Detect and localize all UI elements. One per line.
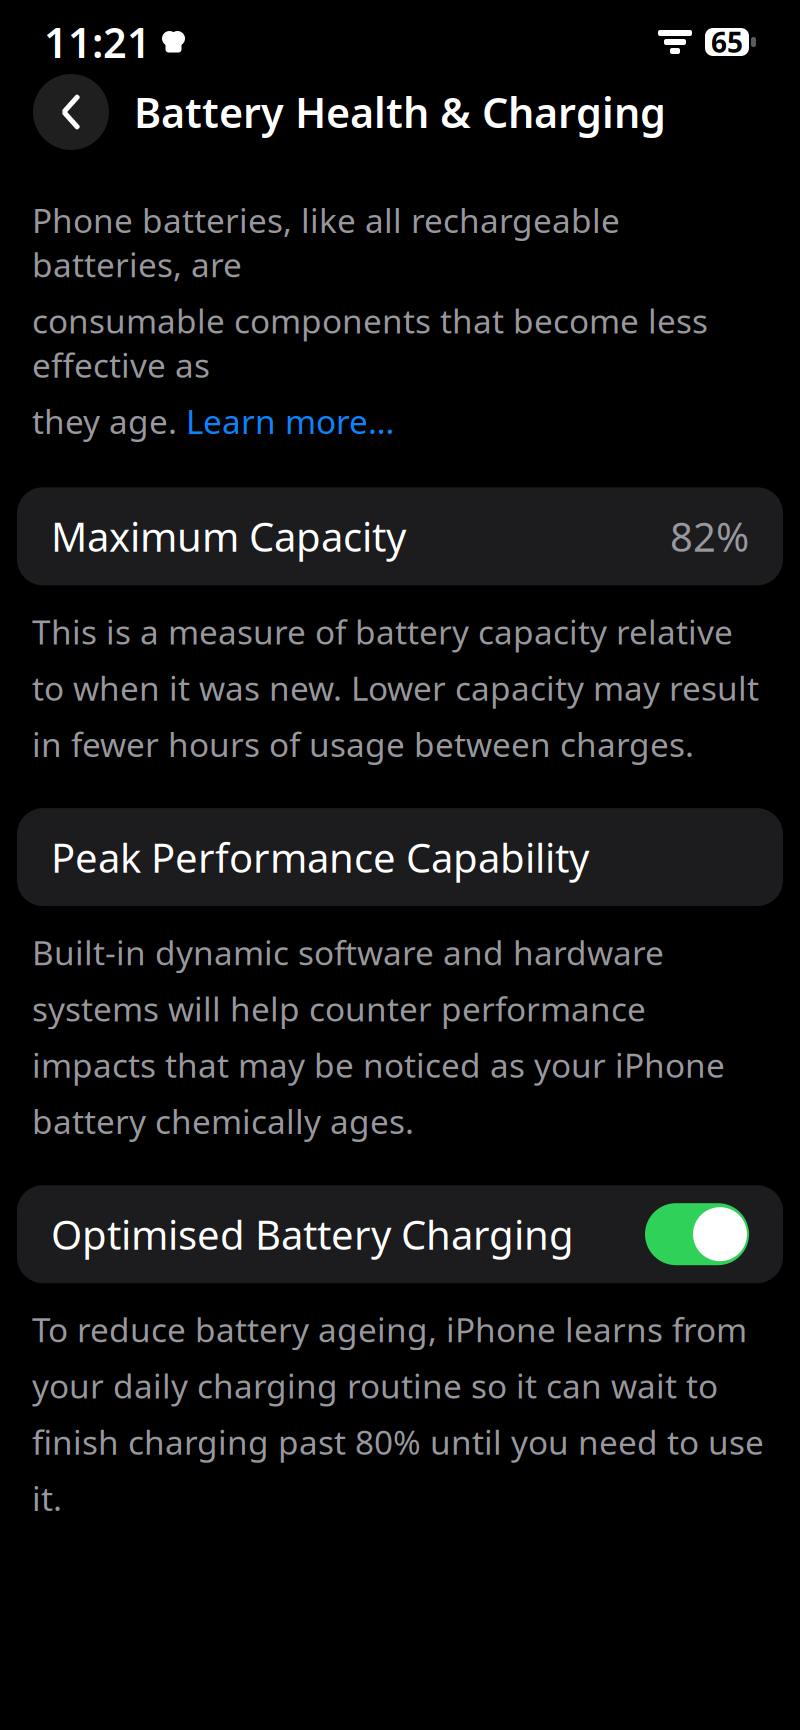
staticText: 65 — [711, 23, 743, 61]
staticText: Optimised Battery Charging — [51, 1208, 574, 1261]
staticText: they age. — [32, 399, 186, 443]
button[interactable]: Optimised Battery Charging — [17, 1185, 783, 1283]
staticText: Built-in dynamic software and hardware s… — [32, 930, 725, 1143]
button[interactable]: Maximum Capacity — [17, 487, 783, 585]
button[interactable]: Peak Performance Capability — [17, 808, 783, 906]
button[interactable]: Back — [33, 74, 109, 150]
button[interactable]: Learn more… — [186, 399, 394, 443]
staticText: 82% — [670, 510, 749, 563]
staticText: To reduce battery ageing, iPhone learns … — [32, 1307, 764, 1520]
staticText: 11:21 — [44, 15, 151, 69]
staticText: consumable components that become less e… — [32, 298, 708, 387]
staticText: Peak Performance Capability — [51, 831, 589, 884]
staticText: Phone batteries, like all rechargeable b… — [32, 198, 620, 286]
staticText: Learn more… — [186, 399, 394, 443]
staticText: Maximum Capacity — [51, 510, 406, 563]
staticText: This is a measure of battery capacity re… — [32, 609, 759, 766]
staticText: Battery Health & Charging — [134, 85, 666, 139]
